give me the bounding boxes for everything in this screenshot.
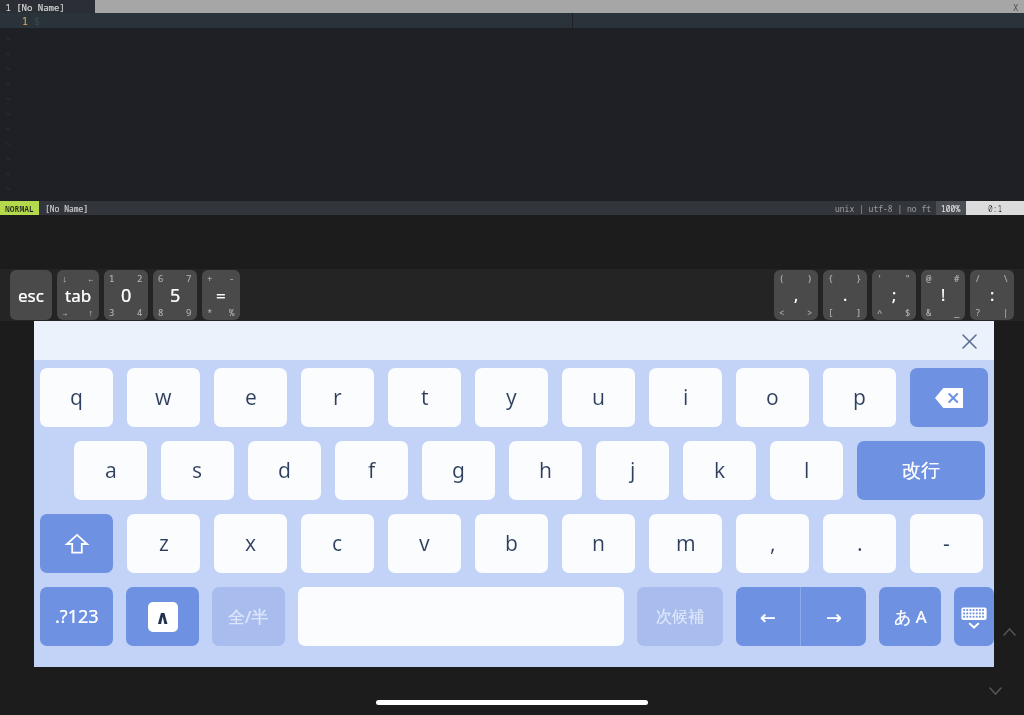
- staticText: 1: [22, 14, 28, 28]
- staticText: →: [62, 306, 68, 318]
- button[interactable]: w: [127, 368, 200, 427]
- staticText: ]: [856, 306, 862, 318]
- button[interactable]: z: [127, 514, 200, 573]
- staticText: ←: [88, 272, 94, 284]
- button[interactable]: e: [214, 368, 287, 427]
- button[interactable]: !: [921, 270, 965, 320]
- staticText: &: [926, 306, 932, 318]
- button[interactable]: .: [823, 270, 867, 320]
- staticText: z: [159, 529, 169, 558]
- button[interactable]: あ A: [879, 587, 941, 646]
- staticText: i: [683, 383, 689, 412]
- staticText: #: [954, 272, 960, 284]
- button[interactable]: :: [970, 270, 1014, 320]
- button[interactable]: 1 [No Name]: [0, 0, 95, 13]
- staticText: _: [954, 306, 960, 318]
- staticText: ^: [877, 306, 883, 318]
- button[interactable]: m: [649, 514, 722, 573]
- staticText: k: [714, 456, 726, 485]
- staticText: 次候補: [656, 607, 704, 627]
- staticText: ": [905, 272, 911, 284]
- button[interactable]: 次候補: [637, 587, 723, 646]
- button[interactable]: Scroll down: [984, 680, 1006, 702]
- staticText: 1: [109, 272, 115, 284]
- staticText: あ A: [894, 605, 927, 628]
- staticText: {: [828, 272, 834, 284]
- button[interactable]: Right: [801, 587, 866, 646]
- button[interactable]: s: [161, 441, 234, 500]
- button[interactable]: Shift: [40, 514, 113, 573]
- staticText: ': [877, 272, 883, 284]
- button[interactable]: ;: [872, 270, 916, 320]
- button[interactable]: Input method: [126, 587, 199, 646]
- button[interactable]: o: [736, 368, 809, 427]
- staticText: tab: [65, 284, 92, 307]
- staticText: 8: [158, 306, 164, 318]
- button[interactable]: d: [248, 441, 321, 500]
- button[interactable]: -: [910, 514, 983, 573]
- button[interactable]: .: [823, 514, 896, 573]
- button[interactable]: t: [388, 368, 461, 427]
- button[interactable]: ,: [774, 270, 818, 320]
- button[interactable]: i: [649, 368, 722, 427]
- button[interactable]: ,: [736, 514, 809, 573]
- staticText: !: [941, 284, 946, 306]
- button[interactable]: Backspace: [910, 368, 988, 427]
- button[interactable]: k: [683, 441, 756, 500]
- button[interactable]: Left: [736, 587, 800, 646]
- button[interactable]: Hide keyboard: [954, 587, 994, 646]
- staticText: NORMAL: [5, 203, 34, 214]
- staticText: p: [853, 383, 866, 412]
- button[interactable]: 0: [104, 270, 148, 320]
- button[interactable]: .?123: [40, 587, 113, 646]
- button[interactable]: esc: [10, 270, 52, 320]
- button[interactable]: b: [475, 514, 548, 573]
- staticText: %: [229, 306, 235, 318]
- button[interactable]: 改行: [857, 441, 985, 500]
- staticText: <: [779, 306, 785, 318]
- staticText: 0:1: [988, 203, 1003, 214]
- staticText: q: [70, 383, 83, 412]
- staticText: n: [592, 529, 605, 558]
- button[interactable]: u: [562, 368, 635, 427]
- staticText: ): [807, 272, 813, 284]
- button[interactable]: j: [596, 441, 669, 500]
- staticText: o: [766, 383, 779, 412]
- staticText: 3: [109, 306, 115, 318]
- staticText: @: [926, 272, 932, 284]
- staticText: }: [856, 272, 862, 284]
- button[interactable]: a: [74, 441, 147, 500]
- button[interactable]: r: [301, 368, 374, 427]
- button[interactable]: x: [214, 514, 287, 573]
- button[interactable]: v: [388, 514, 461, 573]
- staticText: 改行: [902, 459, 940, 483]
- button[interactable]: 全/半: [212, 587, 285, 646]
- button[interactable]: tab: [57, 270, 99, 320]
- staticText: .?123: [55, 604, 99, 629]
- button[interactable]: p: [823, 368, 896, 427]
- button[interactable]: f: [335, 441, 408, 500]
- button[interactable]: g: [422, 441, 495, 500]
- staticText: ,: [770, 529, 776, 558]
- button[interactable]: Close keyboard panel: [954, 326, 984, 356]
- button[interactable]: c: [301, 514, 374, 573]
- staticText: a: [105, 456, 117, 485]
- button[interactable]: l: [770, 441, 843, 500]
- button[interactable]: q: [40, 368, 113, 427]
- button[interactable]: 5: [153, 270, 197, 320]
- button[interactable]: h: [509, 441, 582, 500]
- staticText: c: [332, 529, 343, 558]
- button[interactable]: y: [475, 368, 548, 427]
- button[interactable]: n: [562, 514, 635, 573]
- button[interactable]: Scroll up: [998, 621, 1020, 643]
- button[interactable]: =: [202, 270, 240, 320]
- staticText: 全/半: [228, 605, 269, 628]
- button[interactable]: Close: [1008, 0, 1024, 13]
